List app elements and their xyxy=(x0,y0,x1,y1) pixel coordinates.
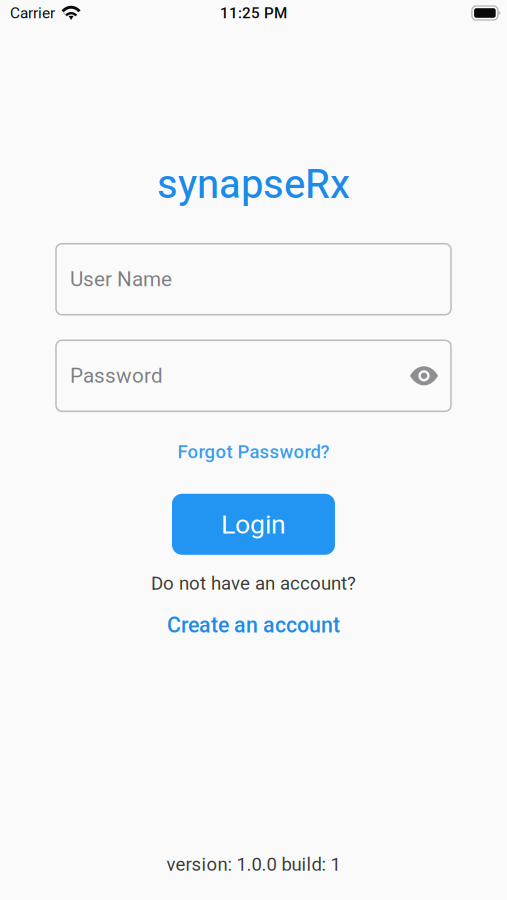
staticText: synapseRx xyxy=(157,161,350,208)
staticText: version: 1.0.0 build: 1 xyxy=(166,853,340,875)
staticText: Do not have an account? xyxy=(151,572,356,594)
staticText: Login xyxy=(221,509,286,540)
staticText: Carrier xyxy=(10,4,55,22)
staticText: User Name xyxy=(70,267,172,291)
button[interactable]: Login xyxy=(172,494,335,555)
button[interactable]: Forgot Password? xyxy=(177,442,329,462)
button[interactable]: Create an account xyxy=(167,614,340,636)
staticText: Create an account xyxy=(167,613,340,638)
staticText: 11:25 PM xyxy=(220,4,287,22)
staticText: Forgot Password? xyxy=(177,441,329,463)
staticText: Password xyxy=(70,364,163,388)
button[interactable]: Show password xyxy=(407,356,441,396)
